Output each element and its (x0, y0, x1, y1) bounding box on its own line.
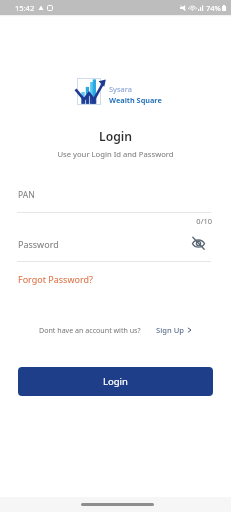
staticText: Dont have an account with us? (39, 325, 141, 335)
staticText: 15:42 (15, 3, 35, 13)
button[interactable]: Forgot Password? (18, 273, 93, 285)
staticText: Login (0, 128, 231, 145)
staticText: Password (18, 238, 59, 250)
staticText: Sysara (109, 84, 132, 94)
button[interactable]: Login (18, 367, 213, 396)
staticText: 0/10 (0, 216, 212, 226)
staticText: Login (103, 375, 128, 388)
staticText: PAN (18, 189, 35, 201)
staticText: Wealth Square (109, 95, 162, 105)
button[interactable]: Show password (191, 236, 206, 249)
button[interactable]: Sign Up (156, 325, 192, 335)
staticText: 74% (206, 3, 221, 13)
staticText: Sign Up (156, 325, 184, 335)
staticText: Use your Login Id and Password (0, 149, 231, 159)
